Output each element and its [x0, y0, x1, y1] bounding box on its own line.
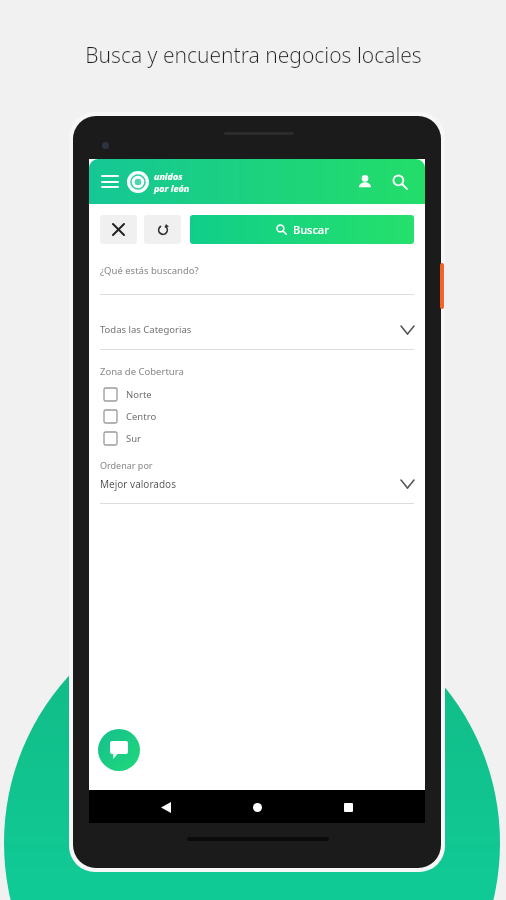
button[interactable]: Mejor valorados: [100, 477, 414, 491]
button[interactable]: Centro: [100, 410, 414, 423]
button[interactable]: Recents: [335, 794, 361, 820]
button[interactable]: Buscar: [190, 215, 414, 244]
staticText: Todas las Categorias: [100, 323, 192, 336]
staticText: Ordenar por: [100, 459, 153, 471]
button[interactable]: Home: [244, 794, 270, 820]
staticText: por león: [154, 182, 190, 194]
button[interactable]: Refresh: [144, 215, 181, 244]
button[interactable]: Norte: [100, 388, 414, 401]
staticText: Centro: [126, 410, 157, 423]
button[interactable]: Menu: [98, 170, 122, 194]
button[interactable]: Todas las Categorias: [100, 323, 414, 336]
button[interactable]: Clear: [100, 215, 137, 244]
staticText: ¿Qué estás buscando?: [100, 264, 199, 277]
staticText: Buscar: [293, 222, 329, 237]
button[interactable]: Search: [386, 168, 414, 196]
button[interactable]: unidos: [127, 168, 190, 195]
button[interactable]: Chat: [98, 729, 140, 771]
staticText: Mejor valorados: [100, 477, 176, 491]
button[interactable]: Back: [153, 794, 179, 820]
button[interactable]: Account: [351, 168, 379, 196]
staticText: Norte: [126, 388, 152, 401]
button[interactable]: Sur: [100, 432, 414, 445]
staticText: Sur: [126, 432, 142, 445]
staticText: unidos: [154, 170, 183, 182]
staticText: Zona de Cobertura: [100, 365, 184, 378]
staticText: Busca y encuentra negocios locales: [85, 41, 422, 70]
